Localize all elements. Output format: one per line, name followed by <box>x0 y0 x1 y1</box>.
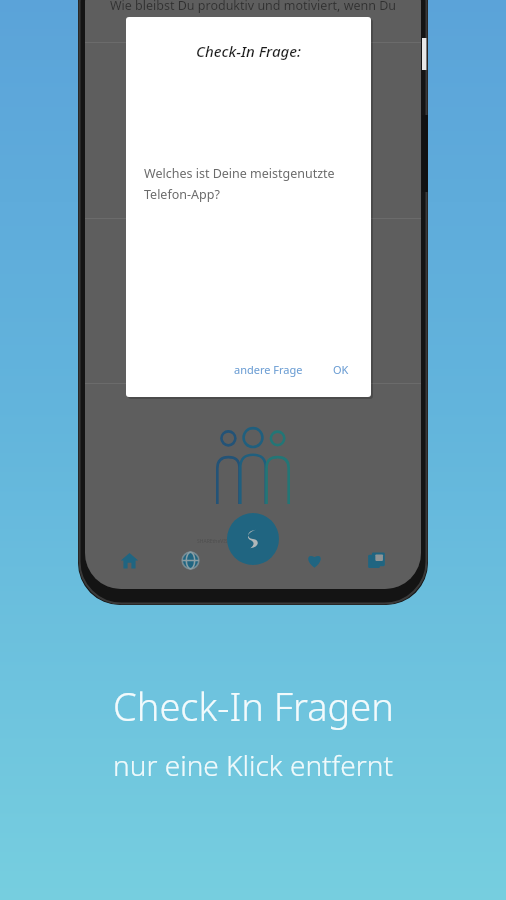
staticText: SHAREtheVISION <box>197 538 238 545</box>
staticText: Wie bleibst Du produktiv und motiviert, … <box>99 0 407 32</box>
staticText: Check-In Frage: <box>126 41 371 61</box>
staticText: Check-In Fragen <box>113 680 394 732</box>
staticText: OK <box>333 362 349 377</box>
button[interactable]: Wie bleibst Du produktiv und motiviert, … <box>99 0 407 32</box>
staticText: andere Frage <box>234 362 303 377</box>
button[interactable]: Share <box>227 513 279 565</box>
button[interactable]: andere Frage <box>226 356 311 383</box>
button[interactable]: OK <box>325 356 357 383</box>
button[interactable]: Library <box>345 531 407 589</box>
staticText: Welches ist Deine meistgenutzte Telefon-… <box>144 165 347 202</box>
staticText: nur eine Klick entfernt <box>113 746 393 784</box>
button[interactable]: Home <box>99 531 160 589</box>
button[interactable]: Explore <box>160 531 221 589</box>
button[interactable]: Favourites <box>283 531 345 589</box>
